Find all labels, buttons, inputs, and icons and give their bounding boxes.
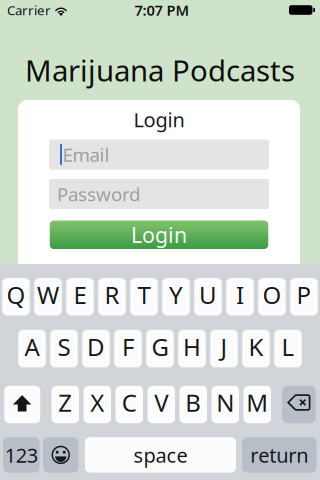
staticText: 123 (5, 442, 38, 468)
button[interactable]: Y (162, 278, 190, 315)
staticText: N (216, 387, 234, 418)
button[interactable]: I (226, 278, 254, 315)
button[interactable]: G (146, 330, 174, 367)
staticText: Password (57, 182, 140, 206)
button[interactable]: P (290, 278, 318, 315)
button[interactable]: Emoji keyboard (43, 437, 78, 473)
button[interactable]: B (179, 386, 207, 423)
button[interactable]: Q (2, 278, 30, 315)
staticText: B (185, 387, 201, 418)
staticText: return (250, 442, 308, 468)
staticText: Login (131, 221, 187, 249)
button[interactable]: Z (51, 386, 79, 423)
staticText: C (122, 387, 137, 418)
staticText: R (104, 279, 119, 311)
staticText: P (296, 279, 311, 311)
staticText: 7:07 PM (134, 0, 189, 20)
staticText: space (133, 442, 187, 468)
button[interactable]: L (274, 330, 302, 367)
staticText: Q (6, 279, 25, 311)
staticText: I (236, 279, 244, 311)
button[interactable]: space (85, 437, 236, 473)
button[interactable]: J (210, 330, 238, 367)
staticText: D (87, 331, 105, 363)
staticText: S (57, 331, 70, 363)
button[interactable]: D (82, 330, 110, 367)
staticText: L (281, 331, 294, 363)
staticText: M (246, 387, 268, 418)
button[interactable]: O (258, 278, 286, 315)
staticText: F (122, 331, 134, 363)
button[interactable]: Email (49, 139, 269, 169)
button[interactable]: Delete (282, 386, 316, 423)
staticText: T (137, 279, 150, 311)
staticText: V (154, 387, 168, 418)
button[interactable]: H (178, 330, 206, 367)
staticText: Login (133, 106, 184, 133)
staticText: J (220, 331, 227, 363)
button[interactable]: C (115, 386, 143, 423)
button[interactable]: 123 (3, 437, 39, 473)
button[interactable]: Password (49, 179, 269, 209)
button[interactable]: T (130, 278, 158, 315)
staticText: O (262, 279, 281, 311)
staticText: X (90, 387, 104, 418)
button[interactable]: V (147, 386, 175, 423)
button[interactable]: Login (50, 220, 268, 249)
button[interactable]: S (50, 330, 78, 367)
button[interactable]: W (34, 278, 62, 315)
staticText: Carrier (7, 1, 51, 19)
button[interactable]: F (114, 330, 142, 367)
staticText: W (37, 279, 59, 311)
staticText: Z (58, 387, 72, 418)
button[interactable]: U (194, 278, 222, 315)
button[interactable]: M (243, 386, 271, 423)
button[interactable]: N (211, 386, 239, 423)
button[interactable]: E (66, 278, 94, 315)
staticText: Y (169, 279, 183, 311)
button[interactable]: X (83, 386, 111, 423)
staticText: H (183, 331, 201, 363)
staticText: K (248, 331, 263, 363)
button[interactable]: R (98, 278, 126, 315)
staticText: A (24, 331, 39, 363)
staticText: E (73, 279, 86, 311)
button[interactable]: A (18, 330, 46, 367)
staticText: U (199, 279, 217, 311)
staticText: Email (62, 142, 109, 167)
staticText: Marijuana Podcasts (25, 50, 295, 89)
staticText: G (151, 331, 168, 363)
button[interactable]: return (242, 437, 316, 473)
button[interactable]: K (242, 330, 270, 367)
button[interactable]: Shift (4, 386, 40, 423)
